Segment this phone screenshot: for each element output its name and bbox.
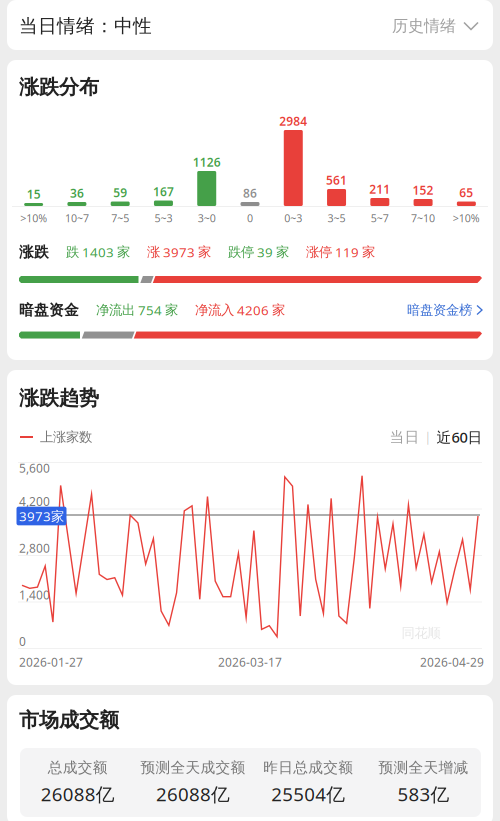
staticText: 0 <box>247 211 253 225</box>
staticText: 4,200 <box>19 493 50 509</box>
staticText: 26088亿 <box>156 782 230 806</box>
staticText: 预测全天成交额 <box>140 759 245 777</box>
staticText: 暗盘资金榜 <box>407 302 472 318</box>
staticText: 涨跌 <box>19 243 49 261</box>
button[interactable]: 历史情绪 <box>386 7 484 45</box>
staticText: 家 <box>272 302 285 318</box>
staticText: 涨 <box>147 244 160 260</box>
staticText: 2984 <box>279 113 307 129</box>
staticText: 上涨家数 <box>40 429 92 445</box>
staticText: 当日情绪：中性 <box>19 14 152 37</box>
button[interactable]: 近60日 <box>433 421 485 453</box>
staticText: 5~7 <box>371 211 389 225</box>
staticText: 家 <box>117 244 130 260</box>
staticText: 当日 <box>389 428 419 446</box>
staticText: 5,600 <box>19 460 50 476</box>
staticText: 167 <box>153 183 174 199</box>
staticText: 4206 <box>237 301 269 319</box>
staticText: 市场成交额 <box>19 708 119 732</box>
staticText: | <box>424 429 431 445</box>
staticText: 3~5 <box>327 211 345 225</box>
staticText: 预测全天增减 <box>378 759 468 777</box>
staticText: 同花顺 <box>401 625 440 641</box>
staticText: 86 <box>243 185 257 201</box>
staticText: 0~3 <box>284 211 302 225</box>
button[interactable]: 暗盘资金榜 <box>407 296 482 324</box>
staticText: 7~5 <box>111 211 129 225</box>
staticText: 昨日总成交额 <box>263 759 353 777</box>
staticText: 家 <box>165 302 178 318</box>
staticText: 2026-03-17 <box>218 654 282 670</box>
button[interactable]: 当日 <box>386 422 422 452</box>
staticText: 7~10 <box>411 211 435 225</box>
staticText: 近60日 <box>436 427 482 447</box>
staticText: 3973家 <box>19 507 64 525</box>
staticText: 净流出 <box>96 302 135 318</box>
staticText: 1126 <box>193 154 221 170</box>
staticText: 3~0 <box>198 211 216 225</box>
staticText: 561 <box>326 172 347 188</box>
staticText: 跌 <box>66 244 79 260</box>
staticText: 36 <box>70 185 84 201</box>
staticText: 涨跌趋势 <box>19 386 99 410</box>
staticText: 152 <box>413 182 434 198</box>
staticText: 119 <box>335 243 359 261</box>
staticText: 15 <box>27 186 41 202</box>
staticText: 暗盘资金 <box>19 301 79 319</box>
staticText: 583亿 <box>397 782 449 806</box>
staticText: 25504亿 <box>271 782 345 806</box>
staticText: >10% <box>453 211 480 225</box>
staticText: 211 <box>369 181 390 197</box>
staticText: 家 <box>362 244 375 260</box>
staticText: 家 <box>276 244 289 260</box>
staticText: 跌停 <box>228 244 254 260</box>
staticText: 总成交额 <box>48 759 108 777</box>
staticText: 65 <box>459 184 473 200</box>
staticText: >10% <box>20 211 47 225</box>
staticText: 0 <box>19 633 26 649</box>
staticText: 涨停 <box>306 244 332 260</box>
staticText: 754 <box>138 301 162 319</box>
staticText: 39 <box>257 243 273 261</box>
staticText: 1403 <box>82 243 114 261</box>
staticText: 59 <box>113 184 127 200</box>
staticText: 历史情绪 <box>392 16 456 36</box>
staticText: 2026-01-27 <box>19 654 83 670</box>
staticText: 2,800 <box>19 540 50 556</box>
staticText: 26088亿 <box>41 782 115 806</box>
staticText: 1,400 <box>19 587 50 603</box>
staticText: 家 <box>198 244 211 260</box>
staticText: 净流入 <box>195 302 234 318</box>
staticText: 3973 <box>163 243 195 261</box>
staticText: 2026-04-29 <box>420 654 484 670</box>
staticText: 5~3 <box>154 211 172 225</box>
staticText: 涨跌分布 <box>19 75 99 99</box>
staticText: 10~7 <box>65 211 89 225</box>
